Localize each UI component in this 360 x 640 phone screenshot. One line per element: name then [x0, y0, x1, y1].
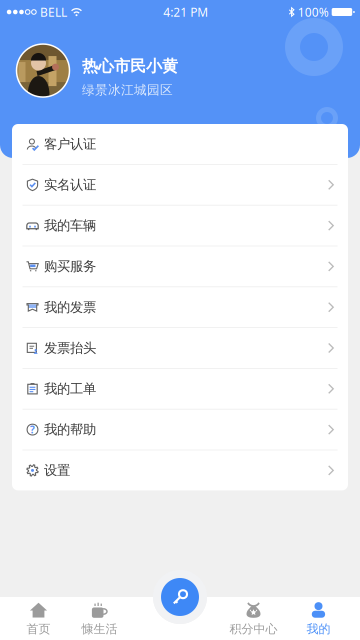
- staticText: 设置: [44, 462, 70, 479]
- button[interactable]: 实名认证: [12, 165, 348, 206]
- button[interactable]: 购买服务: [12, 246, 348, 287]
- staticText: 我的帮助: [44, 421, 96, 438]
- button[interactable]: 慷生活: [69, 597, 130, 640]
- staticText: 客户认证: [44, 136, 96, 152]
- staticText: 4:21 PM: [163, 4, 208, 20]
- button[interactable]: 扫码: [153, 570, 207, 624]
- button[interactable]: 发票抬头: [12, 328, 348, 369]
- staticText: 我的车辆: [44, 217, 96, 234]
- staticText: ?: [30, 423, 35, 436]
- button[interactable]: 首页: [8, 597, 69, 640]
- staticText: 100%: [298, 4, 329, 20]
- staticText: 发票抬头: [44, 340, 96, 356]
- staticText: 我的工单: [44, 380, 96, 397]
- staticText: 实名认证: [44, 176, 96, 193]
- button[interactable]: 我的工单: [12, 369, 348, 410]
- button[interactable]: 设置: [12, 450, 348, 490]
- staticText: BELL: [40, 4, 67, 20]
- staticText: 我的发票: [44, 299, 96, 316]
- button[interactable]: ?: [12, 410, 348, 450]
- button[interactable]: 我的发票: [12, 287, 348, 328]
- staticText: 我的: [306, 621, 330, 636]
- staticText: 热心市民小黄: [82, 56, 178, 76]
- staticText: 首页: [26, 621, 50, 636]
- button[interactable]: 积分中心: [223, 597, 284, 640]
- button[interactable]: 客户认证: [12, 124, 348, 165]
- button[interactable]: 我的车辆: [12, 206, 348, 246]
- button[interactable]: 我的: [288, 597, 349, 640]
- staticText: 慷生活: [81, 621, 117, 636]
- staticText: 积分中心: [229, 621, 277, 636]
- staticText: 购买服务: [44, 258, 96, 275]
- staticText: 绿景冰江城园区: [82, 82, 173, 98]
